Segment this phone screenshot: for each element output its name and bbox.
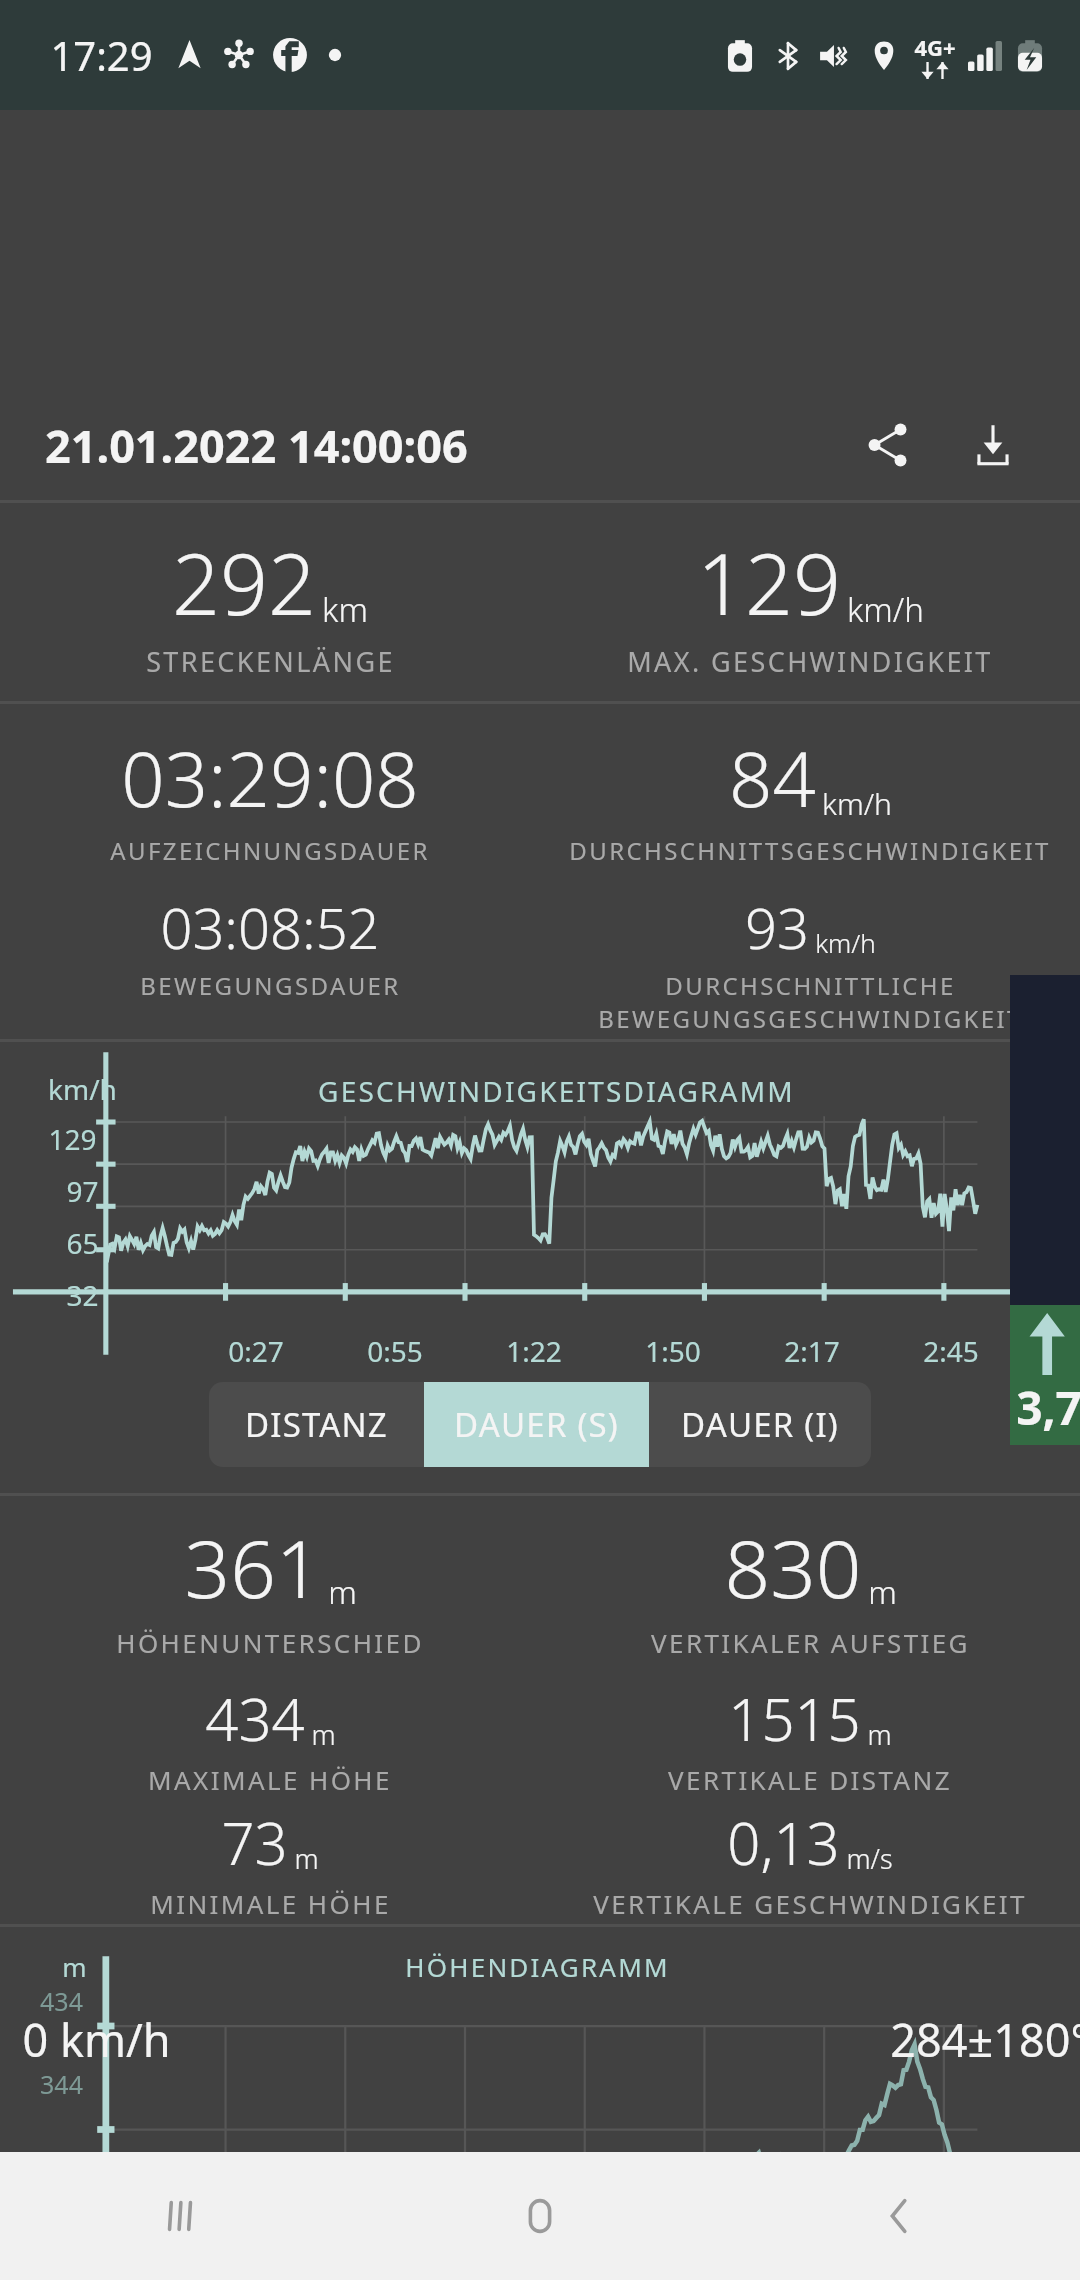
- staticText: 73: [221, 1803, 288, 1882]
- button[interactable]: DAUER (I): [649, 1382, 871, 1467]
- staticText: 361: [184, 1512, 322, 1621]
- staticText: m/s: [846, 1840, 893, 1877]
- staticText: km: [322, 587, 368, 632]
- staticText: 284±180°: [890, 2009, 1080, 2070]
- staticText: 2:17: [784, 1332, 840, 1370]
- staticText: 84: [729, 726, 816, 830]
- staticText: 129: [48, 1120, 97, 1158]
- button[interactable]: 361: [0, 1512, 540, 1660]
- staticText: 2:45: [923, 1332, 979, 1370]
- staticText: m: [867, 1716, 892, 1753]
- button[interactable]: 830: [540, 1512, 1080, 1660]
- button[interactable]: 434: [0, 1679, 540, 1797]
- button[interactable]: 1515: [540, 1679, 1080, 1797]
- staticText: MAXIMALE HÖHE: [148, 1762, 392, 1797]
- staticText: 0:55: [367, 1332, 423, 1370]
- staticText: 1:50: [645, 1332, 701, 1370]
- button[interactable]: 292: [0, 525, 540, 680]
- staticText: m: [311, 1716, 336, 1753]
- staticText: 3:12St:: [1062, 1332, 1080, 1370]
- button[interactable]: 84: [540, 726, 1080, 867]
- staticText: km/h: [815, 925, 876, 960]
- staticText: DAUER (I): [681, 1402, 839, 1447]
- staticText: m: [294, 1840, 319, 1877]
- button[interactable]: Navigation overlay: [1010, 975, 1080, 1445]
- button[interactable]: Back: [720, 2152, 1080, 2280]
- staticText: BEWEGUNGSDAUER: [140, 969, 401, 1002]
- staticText: 830: [724, 1512, 862, 1621]
- button[interactable]: 73: [0, 1803, 540, 1921]
- staticText: 3,7: [1016, 1376, 1080, 1439]
- staticText: 0,13: [727, 1803, 840, 1882]
- button[interactable]: Download: [951, 403, 1035, 487]
- staticText: BEWEGUNGSGESCHWINDIGKEIT: [598, 1002, 1023, 1035]
- staticText: 434: [40, 1984, 83, 2018]
- staticText: VERTIKALER AUFSTIEG: [651, 1625, 970, 1660]
- staticText: 292: [172, 525, 316, 639]
- staticText: STRECKENLÄNGE: [146, 643, 395, 680]
- staticText: 65: [66, 1224, 99, 1262]
- button[interactable]: Recent apps: [0, 2152, 360, 2280]
- staticText: 1:22: [506, 1332, 562, 1370]
- staticText: DISTANZ: [245, 1402, 388, 1447]
- staticText: 17:29: [50, 28, 153, 82]
- button[interactable]: Home: [360, 2152, 720, 2280]
- staticText: 93: [745, 889, 809, 965]
- staticText: MINIMALE HÖHE: [150, 1886, 391, 1921]
- button[interactable]: Share: [845, 403, 929, 487]
- button[interactable]: 03:29:08: [0, 726, 540, 867]
- staticText: 434: [205, 1679, 305, 1758]
- staticText: HÖHENUNTERSCHIED: [116, 1625, 424, 1660]
- staticText: 129: [697, 525, 841, 639]
- staticText: km/h: [822, 783, 892, 824]
- staticText: km/h: [847, 587, 924, 632]
- staticText: DURCHSCHNITTLICHE: [665, 969, 956, 1002]
- staticText: 03:08:52: [160, 889, 380, 965]
- staticText: DURCHSCHNITTSGESCHWINDIGKEIT: [569, 834, 1051, 867]
- staticText: VERTIKALE GESCHWINDIGKEIT: [593, 1886, 1027, 1921]
- staticText: AUFZEICHNUNGSDAUER: [110, 834, 430, 867]
- staticText: DAUER (S): [454, 1402, 619, 1447]
- staticText: m: [62, 1949, 87, 1984]
- staticText: m: [868, 1570, 897, 1614]
- staticText: 32: [66, 1276, 99, 1314]
- staticText: HÖHENDIAGRAMM: [405, 1949, 670, 1984]
- button[interactable]: 03:08:52: [0, 889, 540, 1002]
- staticText: GESCHWINDIGKEITSDIAGRAMM: [318, 1072, 795, 1110]
- button[interactable]: 93: [540, 889, 1080, 1035]
- staticText: km/h: [48, 1070, 117, 1108]
- staticText: 344: [40, 2067, 83, 2101]
- button[interactable]: 0,13: [540, 1803, 1080, 1921]
- staticText: m: [328, 1570, 357, 1614]
- staticText: MAX. GESCHWINDIGKEIT: [627, 643, 993, 680]
- staticText: 0 km/h: [22, 2009, 171, 2070]
- staticText: 21.01.2022 14:00:06: [45, 415, 468, 476]
- staticText: 4G+: [914, 32, 956, 62]
- button[interactable]: DISTANZ: [209, 1382, 424, 1467]
- staticText: 0:27: [228, 1332, 284, 1370]
- button[interactable]: 129: [540, 525, 1080, 680]
- staticText: VERTIKALE DISTANZ: [668, 1762, 952, 1797]
- staticText: 1515: [728, 1679, 861, 1758]
- button[interactable]: DAUER (S): [424, 1382, 649, 1467]
- staticText: 97: [66, 1172, 99, 1210]
- staticText: 03:29:08: [121, 726, 419, 830]
